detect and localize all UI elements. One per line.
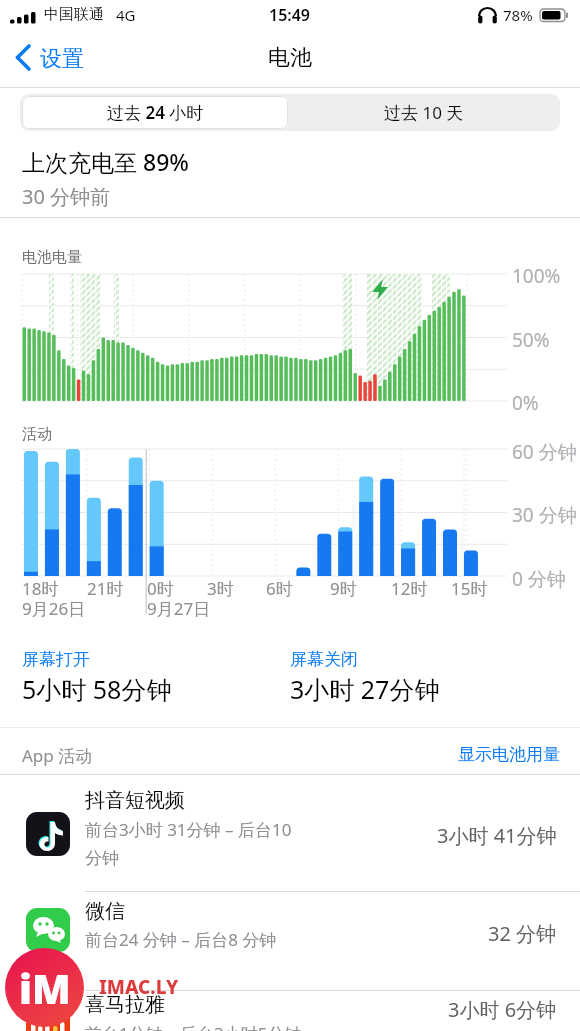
- staticText: 电池: [268, 44, 312, 72]
- staticText: 0时: [147, 577, 174, 600]
- staticText: 显示电池用量: [458, 744, 560, 765]
- staticText: 前台3小时 31分钟 – 后台10 分钟: [85, 818, 292, 869]
- staticText: 活动: [22, 425, 52, 444]
- staticText: 前台1分钟 – 后台3小时5分钟: [85, 1022, 302, 1031]
- staticText: 15:49: [269, 4, 311, 26]
- staticText: 15时: [451, 577, 488, 600]
- button[interactable]: [14, 40, 124, 80]
- staticText: 6时: [266, 577, 293, 600]
- staticText: IMAC.LY: [99, 974, 179, 1000]
- staticText: 9月26日: [22, 597, 86, 620]
- staticText: 9时: [330, 577, 357, 600]
- button[interactable]: [0, 991, 580, 1031]
- button[interactable]: 过去 24 小时: [22, 96, 288, 129]
- button[interactable]: [0, 775, 580, 891]
- staticText: 30 分钟: [512, 502, 577, 528]
- staticText: App 活动: [22, 744, 93, 767]
- staticText: 抖音短视频: [85, 788, 185, 813]
- staticText: 5小时 58分钟: [22, 672, 172, 706]
- staticText: 12时: [391, 577, 428, 600]
- staticText: 9月27日: [147, 597, 211, 620]
- staticText: 设置: [40, 45, 84, 73]
- button[interactable]: 过去 10 天: [290, 96, 558, 129]
- staticText: 4G: [116, 5, 136, 25]
- staticText: 18时: [22, 577, 59, 600]
- staticText: 3小时 6分钟: [448, 996, 557, 1023]
- staticText: 3小时 41分钟: [437, 822, 557, 849]
- staticText: 过去 10 天: [384, 101, 464, 124]
- staticText: 过去 24 小时: [107, 101, 204, 124]
- staticText: 21时: [87, 577, 124, 600]
- staticText: 60 分钟: [512, 439, 577, 465]
- staticText: 50%: [512, 327, 550, 353]
- staticText: 3时: [207, 577, 234, 600]
- staticText: 电池电量: [22, 248, 82, 267]
- button[interactable]: [0, 892, 580, 990]
- staticText: 微信: [85, 899, 125, 924]
- staticText: 中国联通: [44, 5, 104, 24]
- staticText: 100%: [512, 263, 561, 289]
- staticText: 32 分钟: [488, 920, 557, 947]
- staticText: 30 分钟前: [22, 183, 111, 210]
- staticText: 喜马拉雅: [85, 992, 165, 1017]
- staticText: 屏幕关闭: [290, 649, 358, 670]
- staticText: iM: [19, 961, 71, 1015]
- staticText: 屏幕打开: [22, 649, 90, 670]
- staticText: 3小时 27分钟: [290, 672, 440, 706]
- staticText: 0%: [512, 390, 539, 416]
- staticText: 上次充电至 89%: [22, 146, 189, 177]
- staticText: 78%: [503, 5, 533, 25]
- staticText: 前台24 分钟 – 后台8 分钟: [85, 928, 277, 951]
- staticText: 0 分钟: [512, 566, 566, 592]
